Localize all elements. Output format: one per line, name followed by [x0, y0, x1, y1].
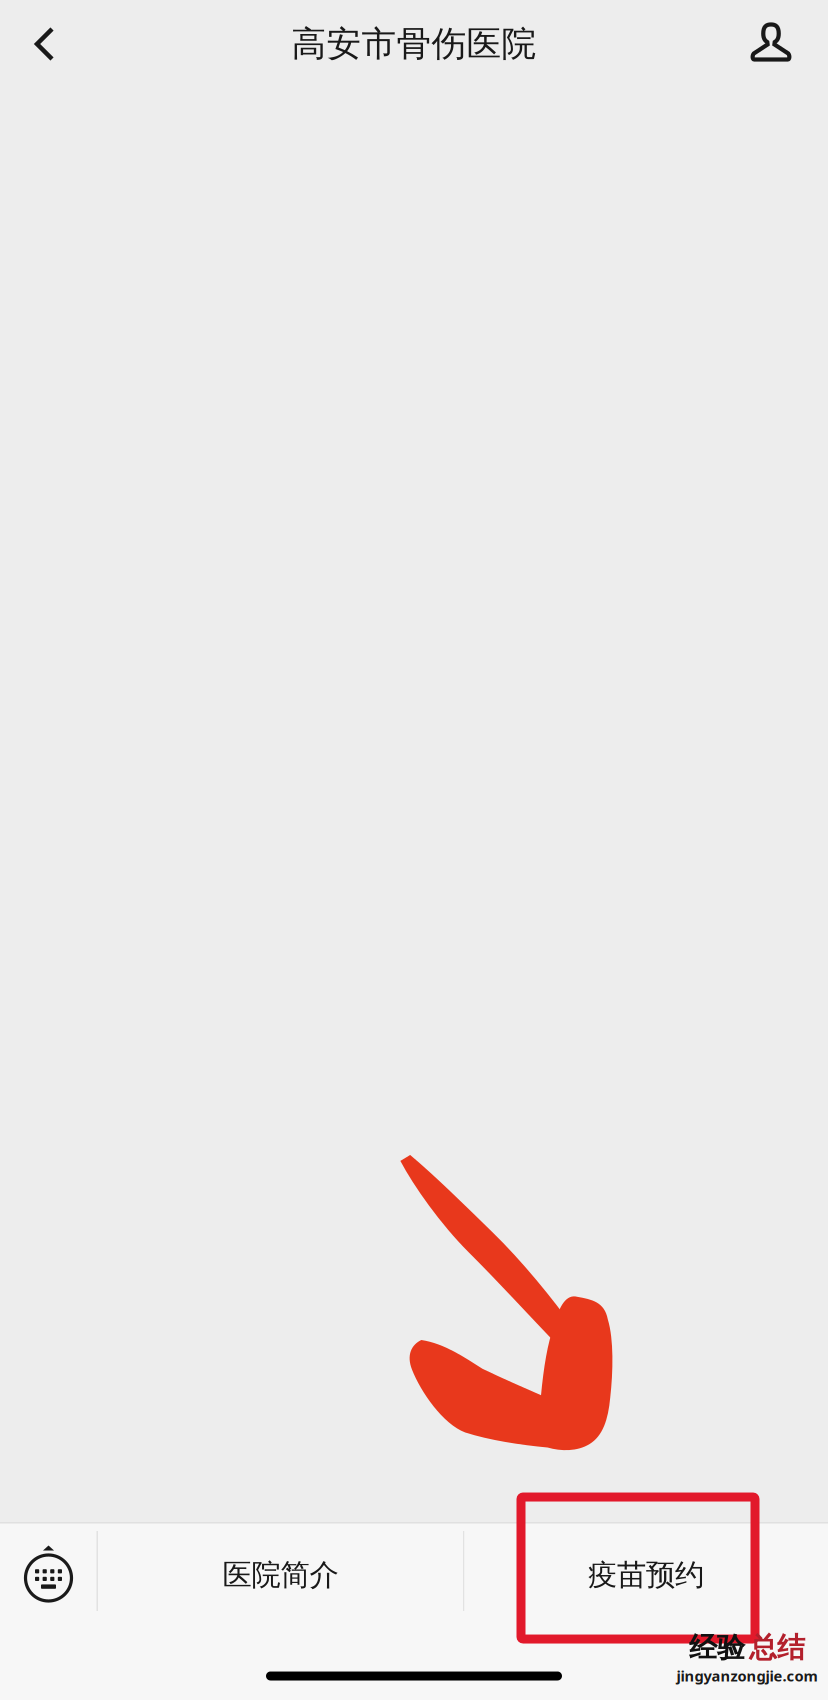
- staticText: 医院简介: [222, 1557, 338, 1593]
- staticText: 高安市骨伤医院: [291, 23, 536, 65]
- staticText: 总结: [749, 1631, 805, 1665]
- button[interactable]: 医院简介: [98, 1522, 463, 1620]
- staticText: jingyanzongjie.com: [676, 1666, 817, 1685]
- button[interactable]: Back: [0, 11, 78, 77]
- staticText: 疫苗预约: [588, 1557, 704, 1593]
- button[interactable]: Mini program menu: [0, 1522, 96, 1620]
- button[interactable]: 疫苗预约: [464, 1522, 827, 1620]
- button[interactable]: Contact: [729, 10, 828, 77]
- staticText: 经验: [689, 1631, 745, 1665]
